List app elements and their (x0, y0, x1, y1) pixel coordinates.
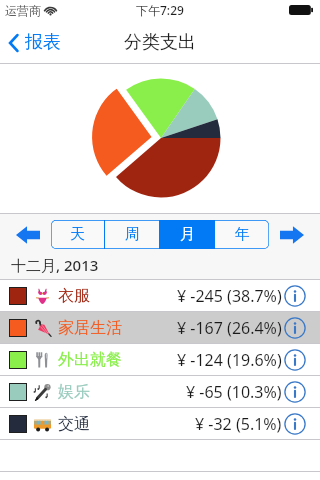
button[interactable]: 周 (105, 220, 159, 249)
staticText: 衣服 (58, 286, 90, 306)
staticText: 分类支出 (124, 31, 196, 54)
button[interactable]: 娱乐 (0, 376, 320, 407)
staticText: ¥ -32 (5.1%) (195, 413, 282, 435)
button[interactable]: 衣服 (0, 280, 320, 311)
button[interactable]: 报表 (0, 24, 71, 61)
button[interactable]: Details for 衣服 (284, 285, 306, 307)
staticText: ¥ -65 (10.3%) (186, 381, 282, 403)
button[interactable]: 交通 (0, 408, 320, 439)
staticText: 外出就餐 (58, 350, 122, 370)
staticText: 天 (70, 225, 85, 244)
button[interactable]: Previous period (16, 226, 40, 244)
staticText: 家居生活 (58, 318, 122, 338)
staticText: ¥ -245 (38.7%) (177, 285, 282, 307)
staticText: 十二月, 2013 (11, 255, 99, 275)
button[interactable]: 月 (160, 220, 214, 249)
staticText: 下午7:29 (136, 2, 184, 18)
button[interactable]: 天 (51, 220, 104, 249)
staticText: 报表 (25, 31, 61, 54)
button[interactable]: 家居生活 (0, 312, 320, 343)
button[interactable]: 年 (215, 220, 269, 249)
button[interactable]: 外出就餐 (0, 344, 320, 375)
button[interactable]: Details for 外出就餐 (284, 349, 306, 371)
staticText: ¥ -124 (19.6%) (177, 349, 282, 371)
staticText: 娱乐 (58, 382, 90, 402)
staticText: 周 (125, 225, 140, 244)
button[interactable]: Next period (280, 226, 304, 244)
button[interactable]: Details for 娱乐 (284, 381, 306, 403)
staticText: 交通 (58, 414, 90, 434)
staticText: 月 (180, 225, 195, 244)
staticText: 运营商 (5, 3, 41, 18)
button[interactable]: Details for 家居生活 (284, 317, 306, 339)
staticText: 年 (235, 225, 250, 244)
button[interactable]: Details for 交通 (284, 413, 306, 435)
staticText: ¥ -167 (26.4%) (177, 317, 282, 339)
